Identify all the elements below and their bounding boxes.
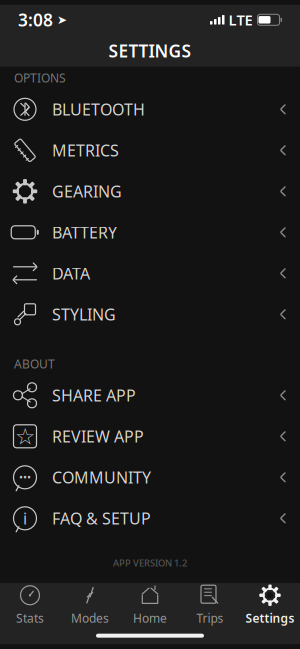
staticText: Stats	[16, 610, 44, 626]
button[interactable]: •••	[0, 457, 300, 498]
staticText: ABOUT	[14, 356, 55, 372]
staticText: 3:08	[18, 8, 53, 31]
staticText: SETTINGS	[108, 39, 191, 62]
staticText: LTE	[228, 10, 252, 30]
staticText: ☆	[15, 423, 35, 449]
staticText: Modes	[71, 610, 109, 626]
staticText: REVIEW APP	[52, 426, 144, 447]
staticText: OPTIONS	[14, 70, 66, 86]
staticText: Home	[133, 610, 167, 626]
staticText: FAQ & SETUP	[52, 508, 151, 529]
staticText: COMMUNITY	[52, 467, 151, 488]
button[interactable]: i	[0, 498, 300, 539]
staticText: BLUETOOTH	[52, 99, 145, 120]
button[interactable]: Settings	[240, 583, 300, 627]
staticText: Settings	[245, 610, 294, 626]
button[interactable]: STYLING	[0, 294, 300, 335]
button[interactable]: DATA	[0, 253, 300, 294]
staticText: ➤	[53, 13, 67, 27]
staticText: BATTERY	[52, 222, 117, 243]
staticText: STYLING	[52, 304, 116, 325]
staticText: i	[23, 508, 27, 529]
button[interactable]: BATTERY	[0, 212, 300, 253]
button[interactable]: GEARING	[0, 171, 300, 212]
staticText: DATA	[52, 263, 90, 284]
staticText: APP VERSION 1.2	[113, 557, 187, 569]
staticText: METRICS	[52, 140, 119, 161]
button[interactable]: METRICS	[0, 130, 300, 171]
button[interactable]: Home	[120, 583, 180, 627]
staticText: GEARING	[52, 181, 122, 202]
staticText: SHARE APP	[52, 385, 136, 406]
staticText: Trips	[196, 610, 223, 626]
button[interactable]: Modes	[60, 583, 120, 627]
button[interactable]: ☆	[0, 416, 300, 457]
button[interactable]: Stats	[0, 583, 60, 627]
button[interactable]: Trips	[180, 583, 240, 627]
button[interactable]: SHARE APP	[0, 375, 300, 416]
button[interactable]: BLUETOOTH	[0, 89, 300, 130]
staticText: •••	[19, 470, 31, 484]
